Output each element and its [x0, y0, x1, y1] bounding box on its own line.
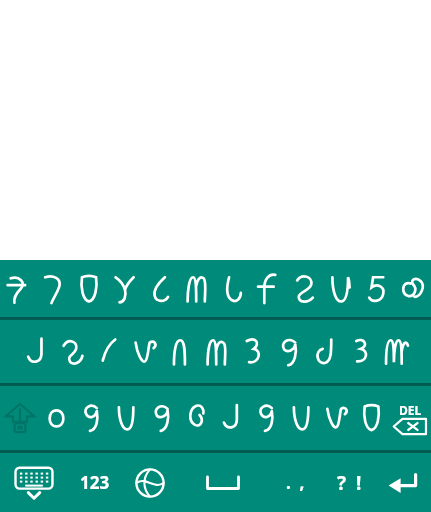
- button[interactable]: ? !: [323, 453, 375, 512]
- button[interactable]: Key: [323, 260, 359, 317]
- button[interactable]: Enter: [375, 453, 431, 512]
- button[interactable]: Key: [179, 260, 215, 317]
- staticText: DEL: [399, 402, 422, 418]
- button[interactable]: Shift: [0, 386, 39, 450]
- button[interactable]: Key: [74, 386, 109, 450]
- button[interactable]: Key: [163, 320, 199, 383]
- button[interactable]: Key: [71, 260, 107, 317]
- button[interactable]: Key: [107, 260, 143, 317]
- button[interactable]: Delete: [389, 386, 431, 450]
- button[interactable]: Key: [199, 320, 235, 383]
- button[interactable]: Key: [54, 320, 91, 383]
- staticText: ? !: [337, 470, 362, 496]
- button[interactable]: Key: [214, 386, 249, 450]
- button[interactable]: Key: [91, 320, 127, 383]
- button[interactable]: Key: [127, 320, 163, 383]
- button[interactable]: Key: [319, 386, 354, 450]
- button[interactable]: Key: [143, 260, 179, 317]
- button[interactable]: Hide keyboard: [0, 453, 68, 512]
- button[interactable]: Key: [39, 386, 74, 450]
- button[interactable]: Key: [359, 260, 395, 317]
- staticText: 123: [80, 471, 110, 494]
- button[interactable]: Key: [17, 320, 54, 383]
- button[interactable]: . ,: [267, 453, 323, 512]
- button[interactable]: Key: [249, 386, 284, 450]
- button[interactable]: Key: [287, 260, 323, 317]
- button[interactable]: Key: [251, 260, 287, 317]
- button[interactable]: Key: [354, 386, 389, 450]
- button[interactable]: Key: [0, 260, 35, 317]
- button[interactable]: Change language: [122, 453, 178, 512]
- button[interactable]: Key: [284, 386, 319, 450]
- button[interactable]: Key: [271, 320, 307, 383]
- button[interactable]: Key: [179, 386, 214, 450]
- button[interactable]: Key: [379, 320, 415, 383]
- button[interactable]: Key: [144, 386, 179, 450]
- button[interactable]: Key: [109, 386, 144, 450]
- button[interactable]: Key: [307, 320, 343, 383]
- button[interactable]: Key: [215, 260, 251, 317]
- button[interactable]: Key: [395, 260, 431, 317]
- button[interactable]: Key: [235, 320, 271, 383]
- staticText: . ,: [286, 471, 305, 494]
- button[interactable]: Key: [35, 260, 71, 317]
- button[interactable]: Key: [343, 320, 379, 383]
- button[interactable]: 123: [68, 453, 122, 512]
- button[interactable]: Space: [178, 453, 267, 512]
